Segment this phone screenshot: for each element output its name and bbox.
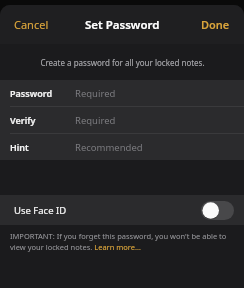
button[interactable]: Use Face ID xyxy=(0,195,244,225)
staticText: Required xyxy=(75,87,116,100)
staticText: Password xyxy=(10,87,53,99)
staticText: Hint xyxy=(10,141,29,153)
staticText: Required xyxy=(75,114,116,127)
staticText: IMPORTANT: If you forget this password, … xyxy=(10,231,234,252)
staticText: Create a password for all your locked no… xyxy=(40,57,205,68)
button[interactable]: Use Face ID toggle, off xyxy=(201,201,234,220)
staticText: Use Face ID xyxy=(14,204,67,217)
staticText: Set Password xyxy=(85,17,160,33)
staticText: Done xyxy=(201,17,230,32)
staticText: Verify xyxy=(10,114,36,126)
button[interactable]: Cancel xyxy=(6,11,57,38)
button[interactable]: Password xyxy=(0,80,244,106)
button[interactable]: Done xyxy=(193,11,238,38)
button[interactable]: Verify xyxy=(0,107,244,133)
staticText: Recommended xyxy=(75,141,143,154)
button[interactable]: Hint xyxy=(0,134,244,160)
staticText: Cancel xyxy=(14,17,49,32)
